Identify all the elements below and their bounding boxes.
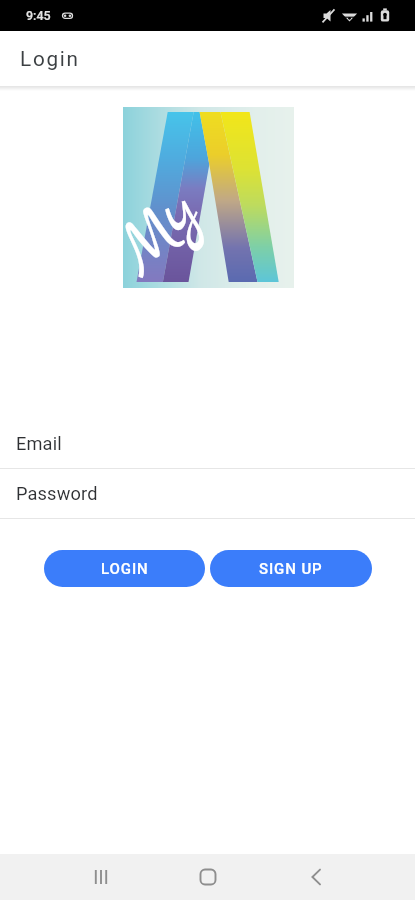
button[interactable]: SIGN UP [210,550,372,587]
button[interactable]: Recent apps [77,854,125,900]
button[interactable]: LOGIN [44,550,205,587]
button[interactable]: Home [184,854,232,900]
button[interactable]: Password [0,469,415,518]
staticText: 9:45 [26,8,51,23]
staticText: SIGN UP [259,560,323,578]
staticText: Login [20,47,80,71]
button[interactable]: Email [0,419,415,468]
staticText: Email [16,433,62,454]
staticText: LOGIN [101,560,149,578]
staticText: Password [16,483,98,504]
button[interactable]: Back [292,854,340,900]
